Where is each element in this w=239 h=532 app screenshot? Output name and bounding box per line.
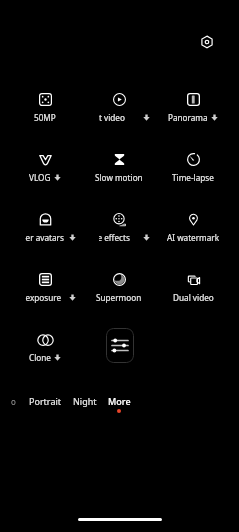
button[interactable]: Portrait [24,391,67,411]
staticText: Night [73,395,97,407]
staticText: o [11,396,16,407]
button[interactable]: Night [68,391,102,411]
button[interactable]: Time-lapse [156,153,230,193]
staticText: Long exposure [25,292,62,303]
staticText: Super avatars [25,232,64,243]
button[interactable]: Long exposure [8,273,82,313]
staticText: Portrait [29,395,62,407]
staticText: Supermoon [96,292,142,303]
staticText: Panorama [168,112,208,123]
button[interactable]: Slow motion [82,153,156,193]
button[interactable]: AI watermark [156,213,230,253]
button[interactable]: VLOG [8,153,82,193]
button[interactable]: Dual video [156,273,230,313]
button[interactable]: Settings [193,28,221,56]
button[interactable]: Super avatars [8,213,82,253]
staticText: Slow motion [95,172,143,183]
staticText: 50MP [34,112,56,123]
button[interactable]: More [103,391,136,411]
button[interactable]: Supermoon [82,273,156,313]
staticText: Movie effects [99,232,130,243]
staticText: AI watermark [167,232,220,243]
button[interactable]: Customize modes [106,328,134,363]
button[interactable]: Clone [8,333,82,373]
staticText: Short video [99,112,125,123]
button[interactable]: Photo [7,389,19,413]
staticText: Time-lapse [172,172,214,183]
staticText: VLOG [29,172,51,183]
button[interactable]: 50MP [8,93,82,133]
staticText: More [108,395,131,407]
staticText: Clone [29,352,51,363]
staticText: Dual video [173,292,214,303]
button[interactable]: Panorama [156,93,230,133]
button[interactable]: Short video [82,93,156,133]
button[interactable]: Movie effects [82,213,156,253]
